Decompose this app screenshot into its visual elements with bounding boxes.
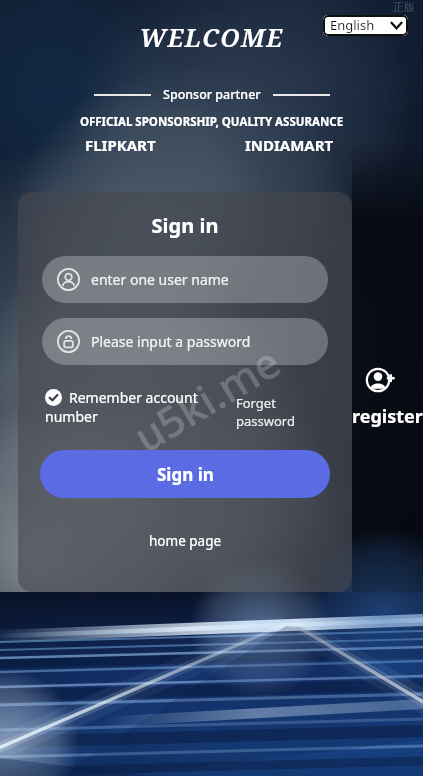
staticText: Please input a password — [91, 332, 251, 351]
staticText: number — [45, 407, 98, 426]
staticText: 正版 — [393, 0, 415, 14]
staticText: Sign in — [18, 212, 352, 239]
staticText: FLIPKART — [85, 135, 156, 155]
staticText: Sponsor partner — [163, 86, 261, 103]
button[interactable]: English — [323, 15, 408, 36]
button[interactable]: Sign in — [40, 450, 330, 498]
button[interactable]: register — [352, 365, 423, 429]
staticText: u5ki.me — [123, 333, 290, 464]
staticText: Sign in — [157, 463, 214, 486]
staticText: WELCOME — [0, 20, 423, 54]
button[interactable]: Please input a password — [42, 318, 328, 365]
staticText: Forget — [236, 394, 276, 412]
button[interactable]: home page — [145, 530, 226, 552]
staticText: register — [352, 404, 423, 429]
staticText: Remember account — [69, 388, 198, 407]
staticText: enter one user name — [91, 270, 229, 289]
staticText: INDIAMART — [245, 135, 334, 155]
button[interactable]: Forget — [236, 394, 295, 430]
staticText: OFFICIAL SPONSORSHIP, QUALITY ASSURANCE — [0, 114, 423, 130]
staticText: password — [236, 412, 295, 430]
button[interactable]: Remember account — [45, 388, 230, 426]
button[interactable]: enter one user name — [42, 256, 328, 303]
staticText: English — [330, 16, 375, 34]
